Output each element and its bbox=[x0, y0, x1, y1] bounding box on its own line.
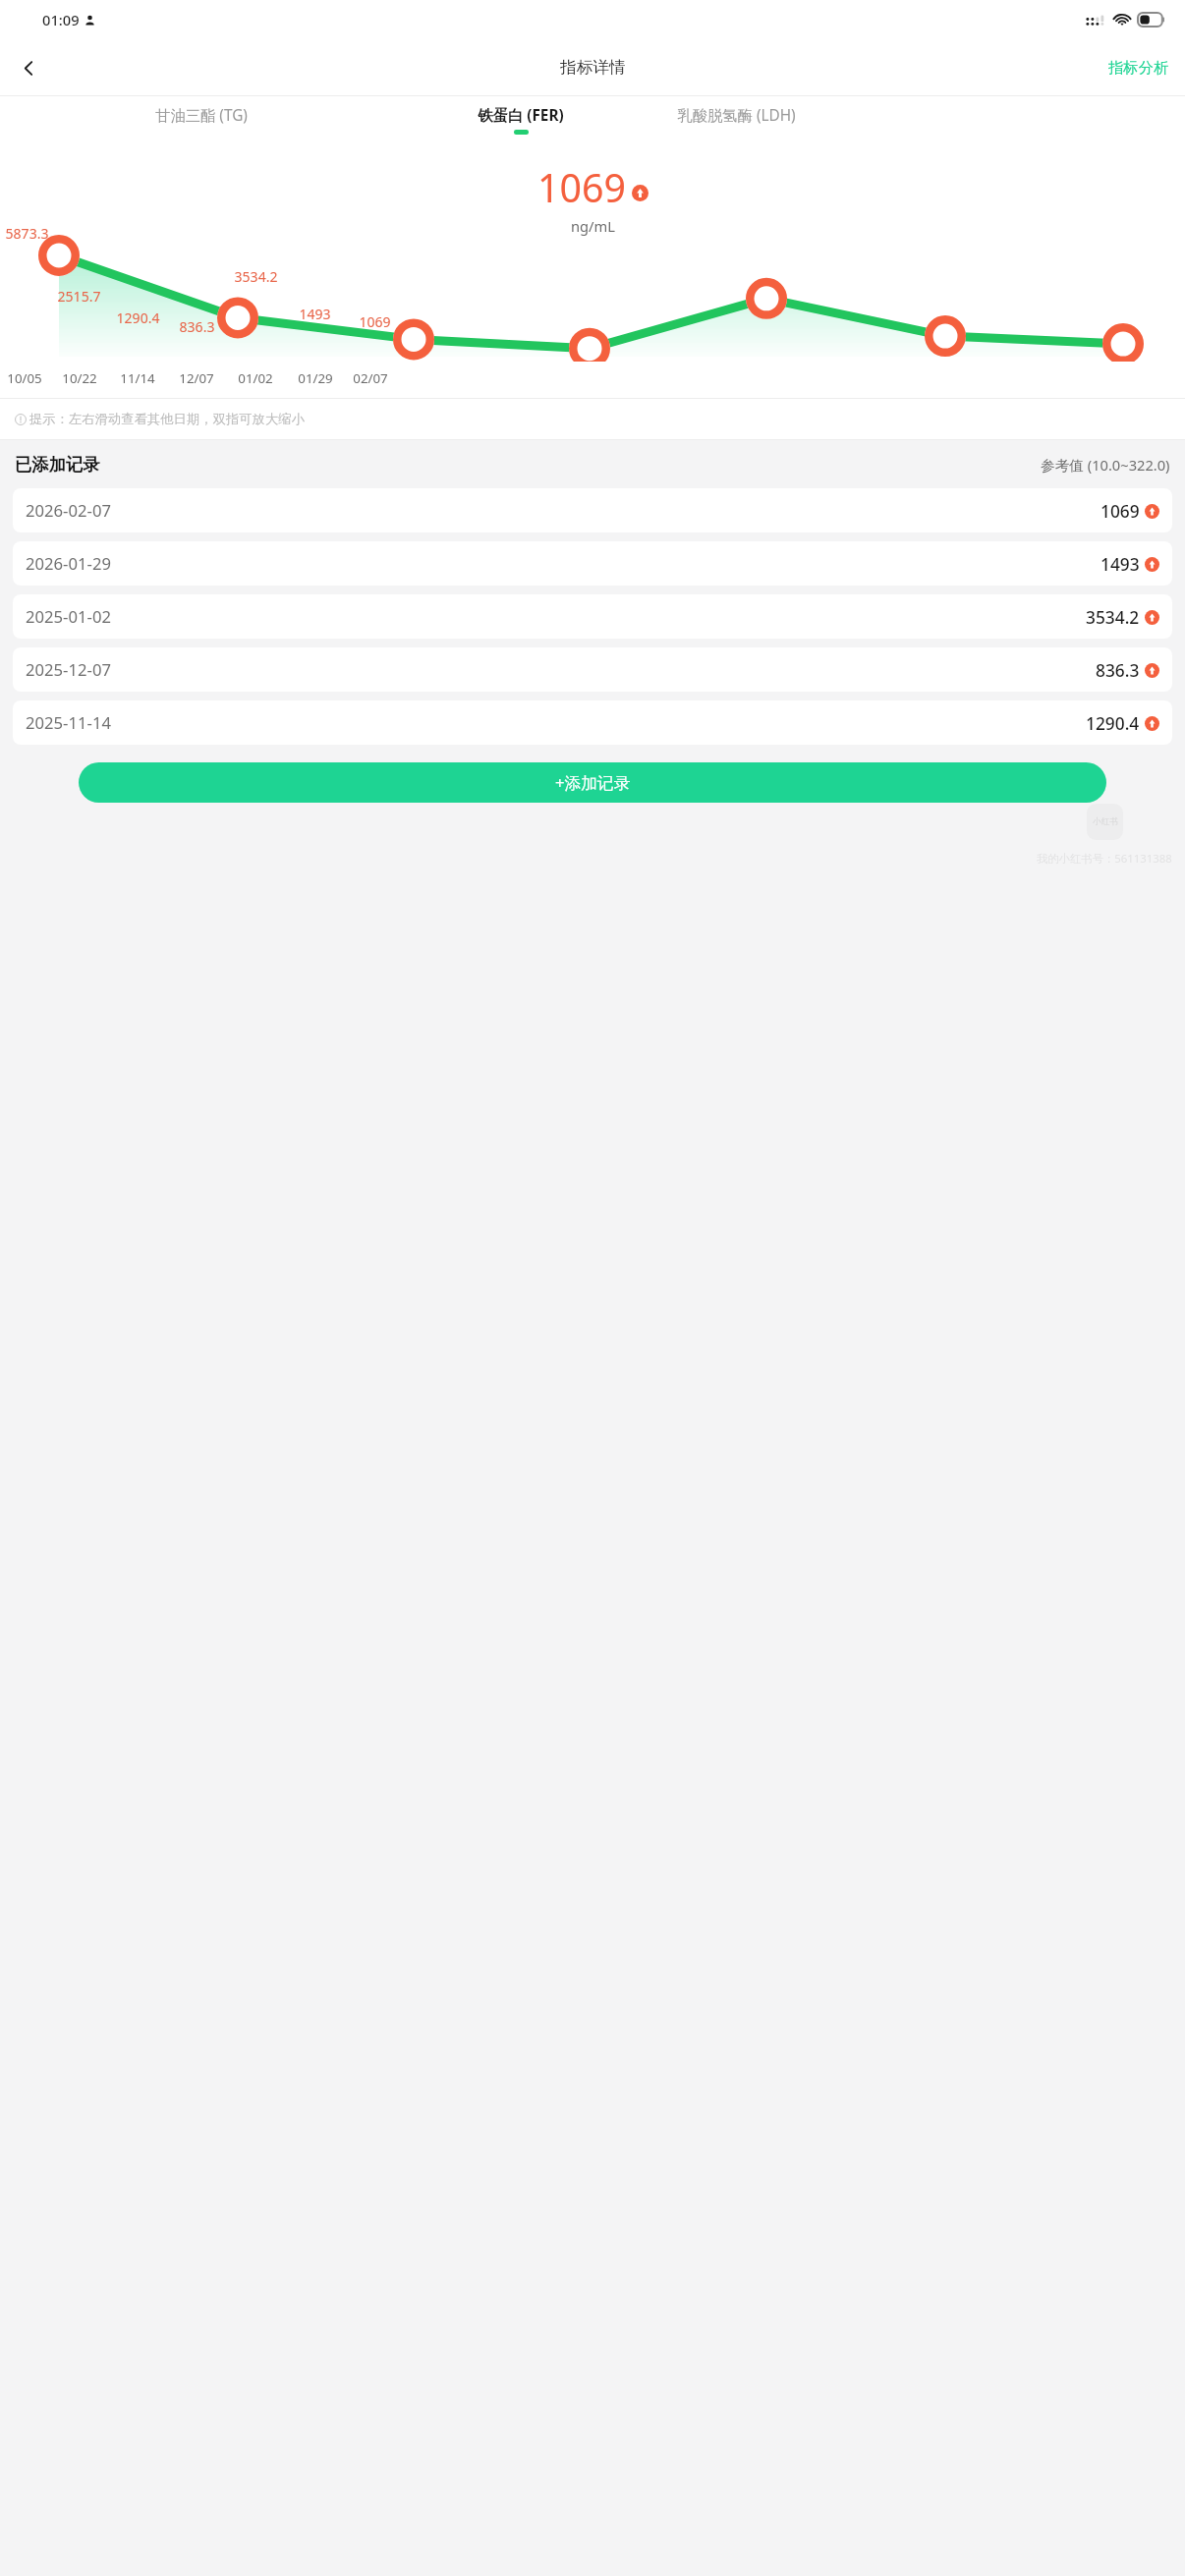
staticText: 小红书 bbox=[1093, 816, 1118, 827]
button[interactable]: 2025-11-14 bbox=[13, 700, 1172, 745]
staticText: 指标详情 bbox=[560, 57, 626, 78]
staticText: 1069 bbox=[342, 312, 408, 331]
staticText: 2515.7 bbox=[46, 287, 112, 306]
staticText: 指标分析 bbox=[1108, 58, 1169, 77]
staticText: 已添加记录 bbox=[15, 454, 100, 476]
staticText: 1493 bbox=[282, 305, 348, 323]
staticText: 我的小红书号：561131388 bbox=[1037, 851, 1172, 866]
staticText: 甘油三酯 (TG) bbox=[155, 105, 248, 126]
staticText: 3534.2 bbox=[223, 267, 289, 286]
staticText: 10/22 bbox=[50, 369, 109, 387]
button[interactable]: 铁蛋白 (FER) bbox=[403, 96, 638, 142]
button[interactable]: +添加记录 bbox=[79, 762, 1106, 803]
staticText: 提示：左右滑动查看其他日期，双指可放大缩小 bbox=[29, 411, 305, 427]
button[interactable]: 乳酸脱氢酶 (LDH) bbox=[638, 96, 835, 142]
staticText: 10/05 bbox=[0, 369, 54, 387]
button[interactable]: 2025-01-02 bbox=[13, 594, 1172, 639]
staticText: 836.3 bbox=[164, 317, 230, 336]
staticText: 1069 bbox=[537, 161, 626, 214]
staticText: 836.3 bbox=[1096, 658, 1140, 682]
staticText: 参考值 (10.0~322.0) bbox=[1041, 455, 1170, 475]
staticText: 乳酸脱氢酶 (LDH) bbox=[677, 105, 796, 126]
staticText: 02/07 bbox=[341, 369, 400, 387]
button[interactable]: 甘油三酯 (TG) bbox=[0, 96, 403, 142]
staticText: 01/02 bbox=[226, 369, 285, 387]
staticText: 11/14 bbox=[108, 369, 167, 387]
staticText: 2025-12-07 bbox=[26, 658, 111, 681]
staticText: 01/29 bbox=[286, 369, 345, 387]
button[interactable]: 返回 bbox=[13, 52, 44, 84]
staticText: 12/07 bbox=[167, 369, 226, 387]
staticText: 1493 bbox=[1100, 552, 1140, 576]
staticText: 3534.2 bbox=[1086, 605, 1140, 629]
staticText: 2025-11-14 bbox=[26, 711, 111, 734]
staticText: 1290.4 bbox=[1086, 711, 1140, 735]
button[interactable]: 2025-12-07 bbox=[13, 647, 1172, 692]
button[interactable]: 指标分析 bbox=[1101, 53, 1176, 82]
staticText: 2025-01-02 bbox=[26, 605, 111, 628]
staticText: 5873.3 bbox=[0, 224, 60, 243]
staticText: 铁蛋白 (FER) bbox=[478, 105, 564, 126]
staticText: 2026-01-29 bbox=[26, 552, 111, 575]
button[interactable]: 2026-02-07 bbox=[13, 488, 1172, 532]
staticText: 01:09 bbox=[42, 10, 80, 29]
staticText: ng/mL bbox=[571, 216, 615, 236]
button[interactable]: 2026-01-29 bbox=[13, 541, 1172, 586]
staticText: 2026-02-07 bbox=[26, 499, 111, 522]
staticText: 1069 bbox=[1100, 499, 1140, 523]
staticText: 1290.4 bbox=[105, 308, 171, 327]
staticText: +添加记录 bbox=[555, 771, 631, 794]
